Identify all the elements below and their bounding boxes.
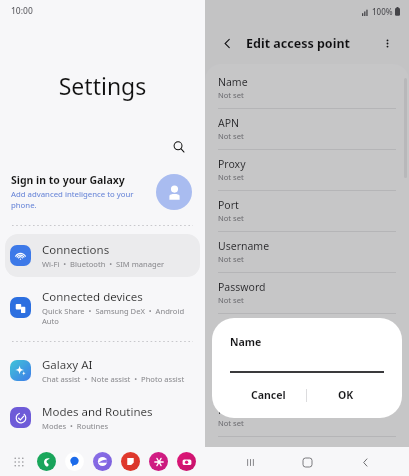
staticText: Not set bbox=[218, 418, 244, 428]
button[interactable]: Internet bbox=[93, 452, 112, 471]
button[interactable]: Phone bbox=[37, 452, 56, 471]
staticText: Cancel bbox=[251, 388, 286, 402]
button[interactable]: MMS proxy bbox=[205, 355, 409, 396]
staticText: Settings bbox=[0, 70, 205, 101]
button[interactable]: Modes and Routines bbox=[5, 396, 200, 439]
button[interactable]: All apps bbox=[9, 452, 28, 471]
staticText: Not set bbox=[218, 254, 244, 264]
staticText: 100% bbox=[372, 6, 393, 17]
staticText: Quick Share • Samsung DeX • Android Auto bbox=[42, 306, 192, 326]
button[interactable]: Sign in to your Galaxy bbox=[0, 169, 205, 215]
staticText: Not set bbox=[218, 172, 244, 182]
staticText: Connected devices bbox=[42, 289, 143, 305]
button[interactable]: Search bbox=[167, 135, 191, 159]
button[interactable]: Profile bbox=[156, 174, 192, 210]
staticText: Add advanced inteligence to your phone. bbox=[11, 189, 134, 211]
button[interactable]: Back bbox=[352, 449, 378, 475]
staticText: Not set bbox=[218, 90, 244, 100]
staticText: Not set bbox=[218, 336, 244, 346]
button[interactable]: Proxy bbox=[205, 150, 409, 191]
staticText: Not set bbox=[218, 295, 244, 305]
button[interactable]: Server bbox=[205, 314, 409, 355]
staticText: Name bbox=[218, 75, 248, 89]
staticText: Modes and Routines bbox=[42, 404, 153, 420]
staticText: Galaxy AI bbox=[42, 357, 93, 373]
staticText: MMS port bbox=[218, 403, 267, 417]
staticText: Not set bbox=[218, 213, 244, 223]
button[interactable]: Name bbox=[205, 68, 409, 109]
button[interactable]: APN bbox=[205, 109, 409, 150]
staticText: Connections bbox=[42, 242, 110, 258]
staticText: Name bbox=[230, 335, 262, 349]
staticText: Username bbox=[218, 239, 270, 253]
staticText: Server bbox=[218, 321, 250, 335]
button[interactable]: OK bbox=[307, 381, 384, 409]
button[interactable]: Messages bbox=[65, 452, 84, 471]
staticText: Proxy bbox=[218, 157, 246, 171]
staticText: Not set bbox=[218, 131, 244, 141]
button[interactable]: Camera bbox=[177, 452, 196, 471]
staticText: Modes • Routines bbox=[42, 421, 109, 431]
staticText: APN bbox=[218, 116, 240, 130]
button[interactable]: Back bbox=[216, 32, 238, 54]
staticText: Password bbox=[218, 280, 266, 294]
button[interactable]: Connected devices bbox=[5, 281, 200, 334]
button[interactable]: Port bbox=[205, 191, 409, 232]
button[interactable]: Recents bbox=[237, 449, 263, 475]
staticText: Chat assist • Note assist • Photo assist bbox=[42, 374, 185, 384]
button[interactable]: Notes bbox=[121, 452, 140, 471]
staticText: MMS proxy bbox=[218, 362, 274, 376]
button[interactable]: Cancel bbox=[230, 381, 306, 409]
button[interactable]: Galaxy AI bbox=[5, 349, 200, 392]
button[interactable]: Username bbox=[205, 232, 409, 273]
button[interactable]: Password bbox=[205, 273, 409, 314]
button[interactable]: More options bbox=[376, 32, 398, 54]
staticText: Port bbox=[218, 198, 239, 212]
button[interactable]: MMS port bbox=[205, 396, 409, 437]
staticText: Sign in to your Galaxy bbox=[11, 173, 125, 187]
staticText: Wi-Fi • Bluetooth • SIM manager bbox=[42, 259, 165, 269]
button[interactable]: Home bbox=[294, 449, 320, 475]
staticText: OK bbox=[338, 388, 354, 402]
button[interactable]: Store bbox=[149, 452, 168, 471]
button[interactable]: Connections bbox=[5, 234, 200, 277]
staticText: Edit access point bbox=[246, 35, 350, 52]
staticText: 10:00 bbox=[11, 5, 33, 17]
